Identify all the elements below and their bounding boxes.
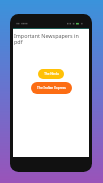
staticText: Important Newspapers in pdf <box>14 32 79 45</box>
button[interactable]: The Indian Express <box>31 82 72 94</box>
button[interactable]: The Hindu <box>38 69 64 79</box>
staticText: The Hindu <box>44 72 59 76</box>
staticText: The Indian Express <box>37 86 66 90</box>
